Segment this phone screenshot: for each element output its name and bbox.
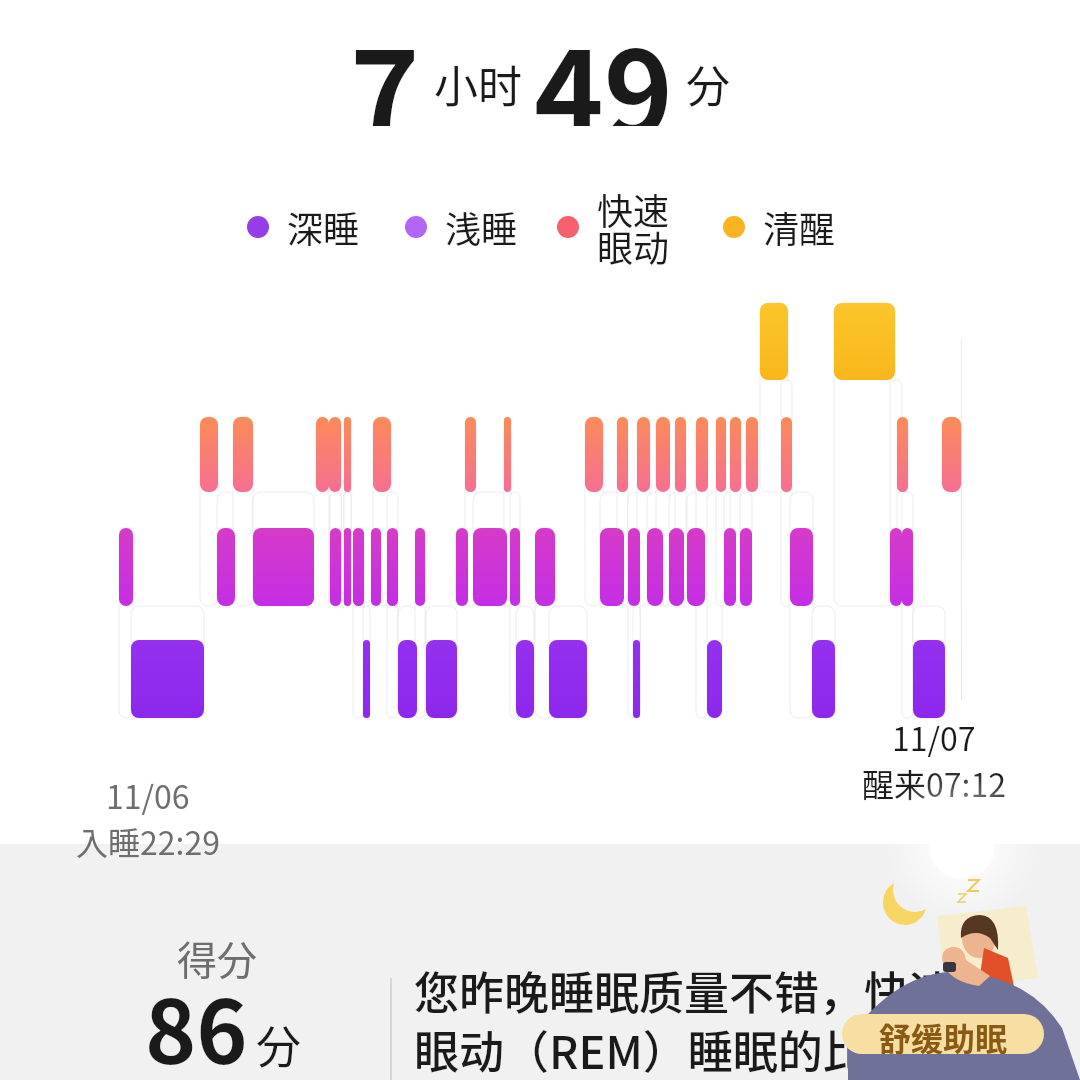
staticText: 86 <box>145 963 248 1080</box>
staticText: 11/06 <box>106 772 190 818</box>
button[interactable]: 清醒 <box>723 201 836 253</box>
staticText: 分 <box>686 52 730 116</box>
staticText: 醒来07:12 <box>862 760 1006 806</box>
staticText: 清醒 <box>763 201 836 253</box>
button[interactable]: 深睡 <box>247 201 360 253</box>
staticText: 深睡 <box>287 201 360 253</box>
staticText: 小时 <box>434 52 522 116</box>
staticText: 您昨晚睡眠质量不错，快速 眼动（REM）睡眠的比例为 <box>414 958 958 1080</box>
staticText: 快速 眼动 <box>597 183 670 272</box>
staticText: 舒缓助眠 <box>879 1014 1008 1054</box>
staticText: 49 <box>534 0 674 126</box>
staticText: 得分 <box>177 929 257 987</box>
staticText: 分 <box>256 1012 302 1077</box>
button[interactable]: 舒缓助眠 <box>842 1014 1044 1054</box>
button[interactable]: 浅睡 <box>405 201 518 253</box>
staticText: 7 <box>350 0 420 126</box>
staticText: 11/07 <box>892 714 976 760</box>
button[interactable]: 快速 眼动 <box>557 179 670 275</box>
staticText: 入睡22:29 <box>76 818 220 864</box>
staticText: 浅睡 <box>445 201 518 253</box>
